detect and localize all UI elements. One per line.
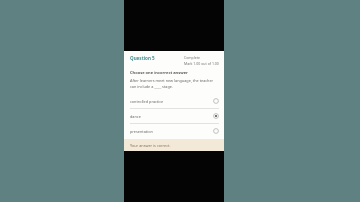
button[interactable]: dance <box>124 109 224 123</box>
staticText: dance <box>130 114 213 119</box>
other: Option <box>213 98 219 104</box>
staticText: presentation <box>130 129 213 134</box>
staticText: Your answer is correct. <box>130 143 171 148</box>
staticText: Question 5 <box>130 55 184 61</box>
staticText: Mark 1.00 out of 1.00 <box>184 61 219 66</box>
staticText: controlled practice <box>130 99 213 104</box>
other: Selected option <box>213 113 219 119</box>
button[interactable]: Your answer is correct. <box>124 139 224 151</box>
staticText: can include a ____ stage. <box>130 84 173 89</box>
button[interactable]: Video playback surface <box>124 0 224 202</box>
staticText: After learners meet new language, the te… <box>130 78 214 83</box>
button[interactable]: presentation <box>124 124 224 138</box>
staticText: Complete <box>184 55 200 60</box>
other: Option <box>213 128 219 134</box>
button[interactable]: controlled practice <box>124 94 224 108</box>
staticText: Choose one incorrect answer <box>130 70 188 75</box>
